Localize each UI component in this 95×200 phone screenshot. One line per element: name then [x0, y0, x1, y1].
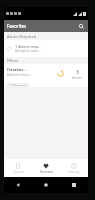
button[interactable]: Settings [60, 160, 88, 177]
button[interactable]: Search [76, 21, 86, 31]
button[interactable]: 1 device requires replacement [4, 40, 88, 57]
staticText: 3 [76, 69, 79, 76]
staticText: devices [72, 76, 82, 80]
staticText: Database sync [7, 67, 27, 73]
button[interactable]: Home [32, 183, 60, 187]
staticText: Favorites [7, 23, 27, 29]
staticText: Attempt to restore sign data [15, 49, 41, 53]
staticText: Devices [13, 170, 24, 174]
staticText: Action Required [7, 34, 36, 39]
button[interactable]: Back [4, 183, 32, 187]
button[interactable]: Recents [60, 183, 88, 187]
staticText: 1 device requires replacement [15, 44, 41, 49]
button[interactable]: Devices [4, 160, 32, 177]
button[interactable]: Database sync [4, 64, 88, 87]
button[interactable]: Favorites [32, 160, 60, 177]
staticText: Favorites [40, 170, 53, 174]
staticText: Filters [7, 58, 19, 63]
staticText: Settings [68, 170, 80, 174]
staticText: 2 Chargers [10, 84, 27, 86]
staticText: All devices from the fleet [7, 73, 32, 77]
button[interactable]: 2 Chargers [7, 83, 30, 87]
